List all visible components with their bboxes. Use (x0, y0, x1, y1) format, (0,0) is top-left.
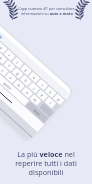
staticText: p (56, 97, 62, 102)
staticText: h (23, 78, 29, 84)
other: Award laurel (76, 1, 89, 20)
staticText: r (7, 53, 12, 58)
staticText: t (15, 60, 20, 65)
staticText: m (32, 97, 38, 103)
staticText: b (17, 83, 22, 88)
staticText: e (0, 45, 5, 51)
staticText: f (7, 63, 12, 68)
button[interactable]: Award laurel (0, 1, 92, 20)
staticText: c (0, 68, 5, 73)
staticText: g (15, 71, 21, 76)
other: Award laurel (4, 1, 17, 20)
staticText: i (41, 83, 45, 87)
staticText: j (32, 86, 36, 90)
staticText: La più veloce nel reperire tutti i dati … (15, 149, 77, 177)
staticText: L'app numero #1 per consultare (18, 6, 75, 11)
staticText: Fine (0, 31, 4, 40)
staticText: o (48, 89, 54, 95)
staticText: n (25, 90, 30, 96)
staticText: informazioni su auto e moto (21, 11, 73, 16)
staticText: v (8, 75, 13, 80)
staticText: invio (33, 109, 41, 117)
staticText: spazio (2, 81, 12, 91)
staticText: u (32, 75, 37, 80)
staticText: d (0, 55, 4, 61)
staticText: l (49, 101, 53, 105)
staticText: k (40, 93, 44, 98)
staticText: y (24, 67, 28, 72)
